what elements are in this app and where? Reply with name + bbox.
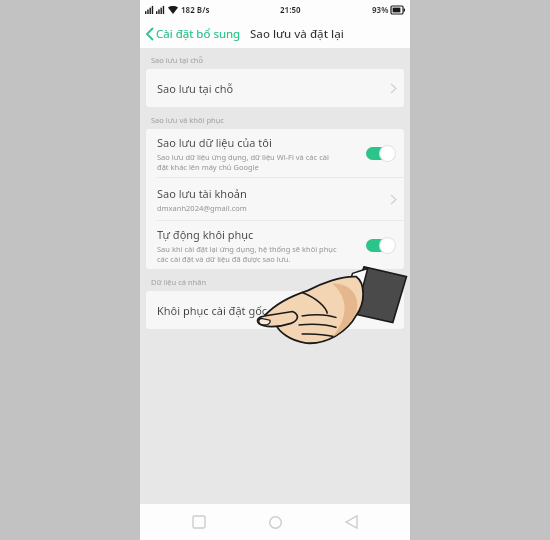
staticText: Sao lưu tại chỗ: [157, 81, 234, 96]
button[interactable]: Home: [258, 505, 292, 539]
staticText: 93%: [372, 4, 389, 15]
button[interactable]: Sao lưu tại chỗ: [146, 69, 404, 107]
staticText: 21:50: [280, 4, 301, 15]
staticText: Sao lưu và đặt lại: [250, 26, 344, 42]
button[interactable]: Tự động khôi phục: [146, 221, 404, 269]
button[interactable]: Sao lưu dữ liệu của tôi: [146, 129, 404, 177]
staticText: Cài đặt bổ sung: [156, 26, 241, 42]
staticText: Sao lưu dữ liệu của tôi: [157, 135, 272, 150]
button[interactable]: Sao lưu tài khoản: [146, 178, 404, 220]
staticText: Tự động khôi phục: [157, 227, 254, 242]
button[interactable]: Toggle: [366, 237, 396, 254]
staticText: Sao lưu tài khoản: [157, 186, 247, 201]
staticText: Dữ liệu cá nhân: [151, 277, 207, 287]
staticText: Sao lưu dữ liệu ứng dụng, dữ liệu Wi-Fi …: [157, 152, 329, 172]
button[interactable]: Toggle: [366, 145, 396, 162]
button[interactable]: Cài đặt bổ sung: [140, 21, 245, 47]
staticText: Sao lưu và khôi phục: [151, 115, 224, 125]
button[interactable]: Recent apps: [182, 505, 216, 539]
staticText: Sau khi cài đặt lại ứng dụng, hệ thống s…: [157, 244, 337, 264]
staticText: 182 B/s: [181, 4, 210, 15]
staticText: Sao lưu tại chỗ: [151, 55, 203, 65]
button[interactable]: Back: [334, 505, 368, 539]
staticText: Khôi phục cài đặt gốc: [157, 303, 268, 318]
staticText: dmxanh2024@gmail.com: [157, 203, 247, 213]
button[interactable]: Khôi phục cài đặt gốc: [146, 291, 404, 329]
